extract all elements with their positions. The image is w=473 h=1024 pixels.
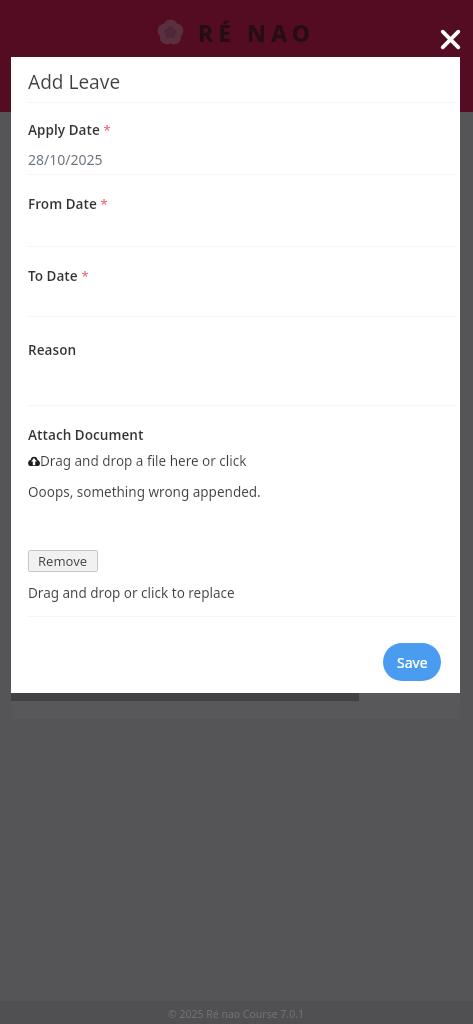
staticText: RÉ NAO <box>198 17 316 48</box>
staticText: Save <box>397 653 428 672</box>
staticText: * <box>97 195 108 213</box>
button[interactable]: Save <box>383 643 441 681</box>
staticText: From Date <box>28 195 97 213</box>
button[interactable]: Close <box>433 22 467 56</box>
staticText: Add Leave <box>28 69 121 95</box>
staticText: Reason <box>28 341 77 359</box>
staticText: Ooops, something wrong appended. <box>28 483 261 501</box>
staticText: Drag and drop or click to replace <box>28 584 235 602</box>
staticText: * <box>78 267 89 285</box>
button[interactable]: Remove <box>28 550 98 572</box>
staticText: © 2025 Ré nao Course 7.0.1 <box>168 1007 305 1021</box>
button[interactable]: Apply date 28/10/2025 <box>28 145 456 174</box>
staticText: Apply Date <box>28 121 100 139</box>
button[interactable]: Drag and drop a file here or click <box>28 452 247 470</box>
staticText: * <box>100 121 111 139</box>
staticText: Remove <box>38 552 88 570</box>
staticText: Attach Document <box>28 426 144 444</box>
staticText: 28/10/2025 <box>28 150 103 169</box>
staticText: To Date <box>28 267 78 285</box>
staticText: Drag and drop a file here or click <box>40 452 247 470</box>
